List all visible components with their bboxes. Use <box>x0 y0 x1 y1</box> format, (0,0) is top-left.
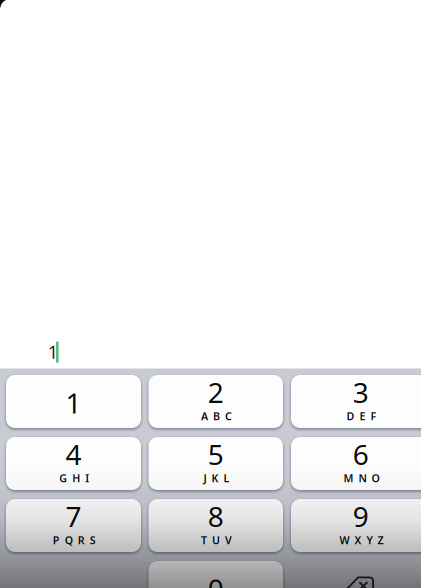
button[interactable]: 0 <box>148 561 283 588</box>
button[interactable]: 5 <box>148 437 283 490</box>
button[interactable]: Delete <box>291 561 421 588</box>
staticText: GHI <box>59 471 89 485</box>
button[interactable]: 3 <box>291 375 421 428</box>
button[interactable]: 9 <box>291 499 421 552</box>
button[interactable]: 4 <box>6 437 141 490</box>
button[interactable]: 8 <box>148 499 283 552</box>
staticText: 6 <box>353 435 369 473</box>
button[interactable]: 1 <box>6 375 141 428</box>
staticText: 4 <box>65 435 81 473</box>
staticText: PQRS <box>53 533 96 547</box>
staticText: WXYZ <box>339 533 383 547</box>
staticText: 1 <box>48 340 58 363</box>
button[interactable]: 2 <box>148 375 283 428</box>
staticText: 1 <box>65 384 81 421</box>
staticText: JKL <box>203 471 229 485</box>
staticText: MNO <box>343 471 379 485</box>
staticText: 2 <box>208 373 224 411</box>
staticText: ABC <box>201 409 232 423</box>
staticText: 7 <box>65 497 81 535</box>
staticText: 9 <box>353 497 369 535</box>
staticText: 3 <box>353 373 369 411</box>
staticText: TUV <box>201 533 232 547</box>
staticText: 5 <box>208 435 224 473</box>
button[interactable]: 7 <box>6 499 141 552</box>
staticText: 8 <box>208 497 224 535</box>
staticText: 0 <box>208 570 224 588</box>
staticText: DEF <box>346 409 376 423</box>
button[interactable]: 6 <box>291 437 421 490</box>
